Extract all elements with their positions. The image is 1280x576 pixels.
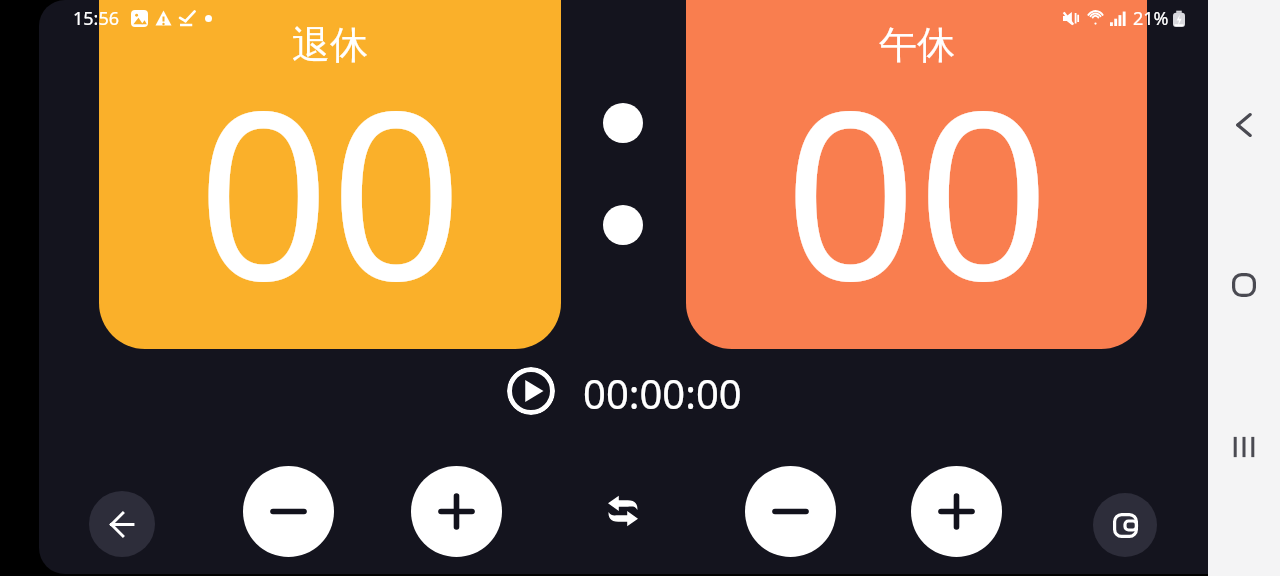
staticText: 15:56 [73, 6, 120, 31]
button[interactable]: Swap [608, 495, 638, 527]
button[interactable]: Recent apps [1221, 424, 1267, 470]
button[interactable]: 午休 [686, 0, 1147, 349]
staticText: 00:00:00 [583, 366, 742, 416]
button[interactable]: Back [89, 491, 155, 557]
button[interactable]: Back [1221, 102, 1267, 148]
button[interactable]: 退休 [99, 0, 561, 349]
button[interactable]: Decrease hours [243, 466, 334, 557]
button[interactable]: Play [507, 367, 555, 415]
staticText: 午休 [879, 21, 955, 69]
button[interactable]: Increase hours [411, 466, 502, 557]
button[interactable]: Decrease minutes [745, 466, 836, 557]
staticText: 00 [784, 32, 1050, 348]
button[interactable]: Picture in picture [1093, 493, 1157, 557]
button[interactable]: Home [1221, 262, 1267, 308]
staticText: 00 [197, 32, 463, 348]
button[interactable]: Increase minutes [911, 466, 1002, 557]
staticText: 退休 [292, 21, 368, 69]
staticText: 21% [1133, 6, 1169, 31]
